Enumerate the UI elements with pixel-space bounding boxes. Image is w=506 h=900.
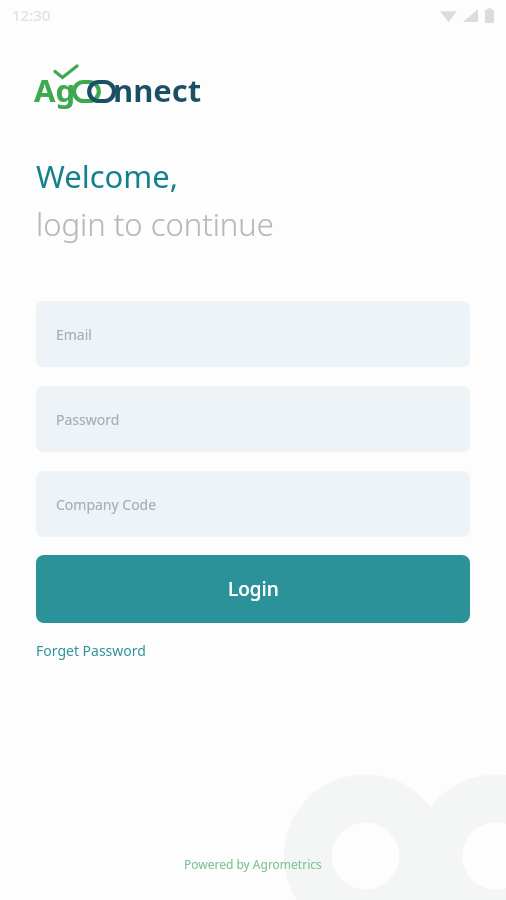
staticText: 12:30	[12, 5, 51, 25]
staticText: Password	[56, 410, 120, 429]
button[interactable]: Company Code	[36, 471, 470, 537]
button[interactable]: Forget Password	[36, 639, 146, 662]
staticText: nnect	[113, 69, 202, 111]
button[interactable]: Login	[36, 555, 470, 623]
button[interactable]: Password	[36, 386, 470, 452]
staticText: Login	[228, 576, 279, 602]
staticText: Ag	[34, 69, 76, 111]
staticText: Email	[56, 325, 92, 344]
staticText: login to continue	[36, 203, 274, 245]
staticText: Forget Password	[36, 641, 146, 660]
button[interactable]: Email	[36, 301, 470, 367]
staticText: Powered by Agrometrics	[184, 856, 322, 872]
other: AgConnect logo	[34, 66, 206, 110]
staticText: Company Code	[56, 495, 157, 514]
staticText: Welcome,	[36, 155, 179, 197]
